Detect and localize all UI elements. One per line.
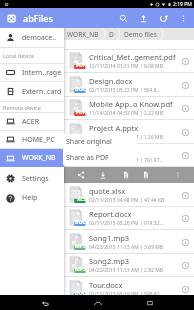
button[interactable]: PDF [64, 50, 194, 72]
button[interactable]: PDF [64, 97, 194, 119]
button[interactable]: File info [177, 281, 193, 297]
staticText: 02/11/2015 05:19 PM | 598.42... [89, 291, 164, 298]
staticText: 11/14/2014 04:53 PM | 2.22 MB [89, 110, 163, 117]
button[interactable]: Copy [118, 167, 134, 183]
button[interactable]: ACER [0, 113, 64, 130]
staticText: 02/11/2015 05:20 PM | 919.32... [89, 220, 164, 227]
staticText: Mobile App..o Know.pdf [89, 99, 173, 109]
staticText: Design.docx [89, 76, 133, 86]
staticText: Song2.mp3 [89, 256, 130, 266]
button[interactable]: Upload [133, 8, 153, 28]
button[interactable]: WORK_NB [64, 28, 102, 40]
button[interactable]: MP3 [64, 230, 194, 253]
staticText: DOC [75, 219, 86, 226]
button[interactable]: File info [177, 257, 193, 273]
button[interactable]: File info [177, 77, 193, 93]
staticText: Demo files [124, 30, 157, 39]
button[interactable]: More options [173, 8, 193, 28]
staticText: PPT [76, 133, 86, 140]
staticText: WORK_NB [67, 30, 99, 39]
staticText: Remote device [3, 104, 41, 111]
button[interactable]: Recents [142, 295, 157, 310]
staticText: Presentation [89, 146, 134, 156]
button[interactable]: Download [95, 167, 111, 183]
button[interactable]: DOC [64, 277, 194, 300]
button[interactable]: demoace.. [0, 28, 64, 47]
button[interactable]: WORK_NB [0, 149, 64, 167]
button[interactable]: Back [37, 295, 52, 310]
button[interactable]: Share as PDF [63, 150, 137, 165]
staticText: Help [22, 193, 38, 203]
staticText: Song1.mp3 [89, 233, 130, 243]
button[interactable]: Share original [63, 134, 137, 150]
button[interactable]: D [106, 28, 117, 40]
staticText: Report.docx [89, 209, 132, 219]
button[interactable]: File info [177, 234, 193, 250]
button[interactable]: File info [177, 100, 193, 116]
button[interactable]: Settings [0, 169, 64, 188]
button[interactable]: HOME_PC [0, 131, 64, 148]
button[interactable]: Help [0, 188, 64, 208]
staticText: 04/22/2015 11:13 AM | 2.82 MB [89, 267, 164, 274]
button[interactable]: Home [90, 295, 105, 310]
button[interactable]: Demo files [121, 28, 160, 40]
button[interactable]: XLS [64, 183, 194, 206]
staticText: DOC [75, 290, 86, 297]
staticText: Project A.pptx [89, 123, 139, 133]
staticText: Share as PDF [66, 153, 109, 163]
button[interactable]: Search [113, 8, 133, 28]
staticText: DOC [75, 86, 86, 93]
staticText: PDF [76, 62, 86, 69]
staticText: Extern..card [22, 87, 62, 97]
staticText: Local device [3, 52, 35, 59]
button[interactable]: Refresh [153, 8, 173, 28]
button[interactable]: Extern..card [0, 82, 64, 101]
staticText: ACER [22, 117, 40, 127]
button[interactable]: More options [170, 167, 186, 183]
staticText: 02/11/2015 05:22 PM | 1.26 MB [89, 134, 163, 141]
staticText: 04/22/2015 11:13 AM | 3.69 MB [89, 244, 164, 251]
button[interactable]: Share [73, 167, 89, 183]
staticText: MP3 [75, 266, 86, 273]
staticText: Tour.docx [89, 280, 123, 290]
staticText: Intern..rage [22, 68, 62, 78]
staticText: Settings [22, 174, 49, 184]
staticText: 12/11/2014 01:31 PM | 8.08 MB [89, 63, 163, 70]
staticText: quote.xlsx [89, 186, 126, 196]
staticText: HOME_PC [22, 135, 55, 145]
staticText: Critical_Met..gement.pdf [89, 52, 176, 62]
button[interactable]: File info [177, 210, 193, 226]
button[interactable]: MP3 [64, 254, 194, 276]
staticText: PDF [76, 109, 86, 116]
button[interactable]: DOC [64, 73, 194, 96]
button[interactable]: File info [177, 187, 193, 203]
button[interactable]: Move [138, 167, 154, 183]
button[interactable]: File info [177, 124, 193, 140]
button[interactable]: Intern..rage [0, 64, 64, 81]
staticText: PPT [76, 156, 86, 163]
staticText: WORK_NB [22, 153, 56, 163]
staticText: 2:19 PM [173, 1, 192, 8]
staticText: 02/11/2015 04:48 PM | 41.44 KB [89, 197, 165, 204]
button[interactable]: PPT [64, 120, 194, 143]
staticText: abFiles [23, 12, 53, 24]
button[interactable]: File info [177, 147, 193, 163]
button[interactable]: Open navigation drawer [5, 12, 18, 25]
staticText: 02/11/2015 05:22 PM | 701.97... [89, 157, 164, 164]
staticText: demoace.. [22, 33, 57, 43]
staticText: D [109, 30, 114, 39]
staticText: XLS [77, 196, 86, 203]
staticText: 02/11/2015 05:22 PM | 564.8... [89, 87, 161, 94]
button[interactable]: PPT [64, 144, 194, 166]
staticText: MP3 [75, 243, 86, 250]
staticText: Share original [66, 137, 112, 147]
button[interactable]: File info [177, 53, 193, 69]
button[interactable]: DOC [64, 207, 194, 229]
